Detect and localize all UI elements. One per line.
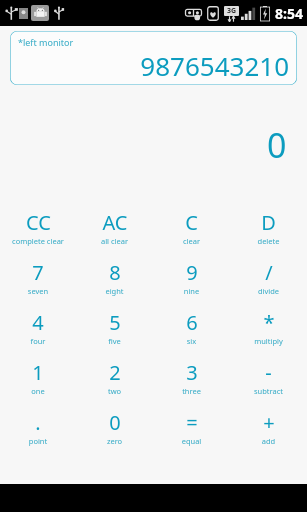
staticText: multiply: [230, 336, 307, 346]
staticText: one: [0, 386, 76, 396]
button[interactable]: 2: [76, 359, 153, 409]
staticText: 8:54: [275, 4, 303, 23]
staticText: AC: [102, 209, 128, 235]
staticText: -: [265, 359, 272, 385]
staticText: 6: [186, 309, 198, 335]
staticText: delete: [230, 236, 307, 246]
button[interactable]: 0: [76, 409, 153, 459]
staticText: 3: [186, 359, 198, 385]
button[interactable]: CC: [0, 209, 76, 259]
staticText: six: [153, 336, 230, 346]
button[interactable]: =: [153, 409, 230, 459]
staticText: four: [0, 336, 76, 346]
staticText: 1: [32, 359, 44, 385]
staticText: /: [265, 259, 273, 285]
button[interactable]: 8: [76, 259, 153, 309]
staticText: *: [263, 309, 275, 335]
staticText: subtract: [230, 386, 307, 396]
staticText: nine: [153, 286, 230, 296]
staticText: 3G: [227, 6, 237, 16]
staticText: 4: [32, 309, 44, 335]
button[interactable]: 9: [153, 259, 230, 309]
staticText: 0: [109, 409, 121, 435]
staticText: +: [263, 409, 275, 435]
button[interactable]: 5: [76, 309, 153, 359]
staticText: *left monitor: [18, 36, 74, 48]
button[interactable]: *: [230, 309, 307, 359]
staticText: 2: [109, 359, 121, 385]
staticText: zero: [76, 436, 153, 446]
staticText: 9: [186, 259, 198, 285]
staticText: 7: [32, 259, 44, 285]
staticText: equal: [153, 436, 230, 446]
button[interactable]: 4: [0, 309, 76, 359]
staticText: five: [76, 336, 153, 346]
staticText: divide: [230, 286, 307, 296]
button[interactable]: C: [153, 209, 230, 259]
staticText: CC: [26, 209, 51, 235]
staticText: two: [76, 386, 153, 396]
staticText: 8: [109, 259, 121, 285]
button[interactable]: .: [0, 409, 76, 459]
staticText: .: [35, 409, 41, 435]
staticText: 5: [109, 309, 121, 335]
staticText: complete clear: [0, 236, 76, 246]
staticText: eight: [76, 286, 153, 296]
staticText: D: [261, 209, 276, 235]
button[interactable]: -: [230, 359, 307, 409]
staticText: seven: [0, 286, 76, 296]
button[interactable]: AC: [76, 209, 153, 259]
button[interactable]: 1: [0, 359, 76, 409]
button[interactable]: 3: [153, 359, 230, 409]
staticText: all clear: [76, 236, 153, 246]
staticText: C: [185, 209, 198, 235]
button[interactable]: D: [230, 209, 307, 259]
button[interactable]: +: [230, 409, 307, 459]
staticText: add: [230, 436, 307, 446]
staticText: 9876543210: [140, 48, 289, 83]
button[interactable]: /: [230, 259, 307, 309]
button[interactable]: 7: [0, 259, 76, 309]
staticText: =: [186, 409, 198, 435]
button[interactable]: *left monitor: [10, 31, 297, 85]
staticText: three: [153, 386, 230, 396]
staticText: 0: [267, 122, 287, 168]
button[interactable]: 6: [153, 309, 230, 359]
staticText: point: [0, 436, 76, 446]
staticText: clear: [153, 236, 230, 246]
